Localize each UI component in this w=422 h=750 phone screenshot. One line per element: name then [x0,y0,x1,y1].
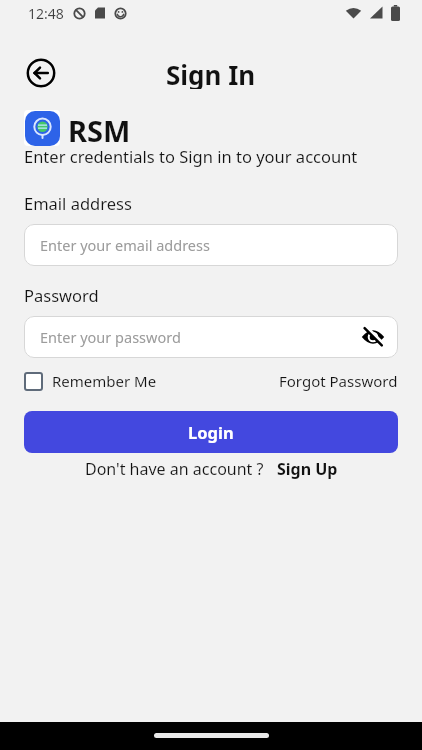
staticText: Don't have an account ? [85,458,264,480]
button[interactable]: Enter your email address [24,224,398,266]
button[interactable]: Enter your password [24,316,398,358]
button[interactable]: Login [24,411,398,453]
staticText: Login [188,421,234,443]
staticText: Enter your password [40,327,181,347]
staticText: Remember Me [52,371,157,391]
staticText: Password [24,284,99,306]
staticText: Enter your email address [40,235,210,255]
staticText: 12:48 [28,4,64,23]
button[interactable]: Remember Me [24,371,157,391]
staticText: Enter credentials to Sign in to your acc… [24,145,358,167]
button[interactable]: Forgot Password [279,371,398,391]
staticText: RSM [68,111,131,147]
button[interactable]: Sign Up [277,458,338,480]
staticText: Email address [24,192,132,214]
button[interactable] [26,58,56,88]
staticText: Sign In [166,57,256,89]
